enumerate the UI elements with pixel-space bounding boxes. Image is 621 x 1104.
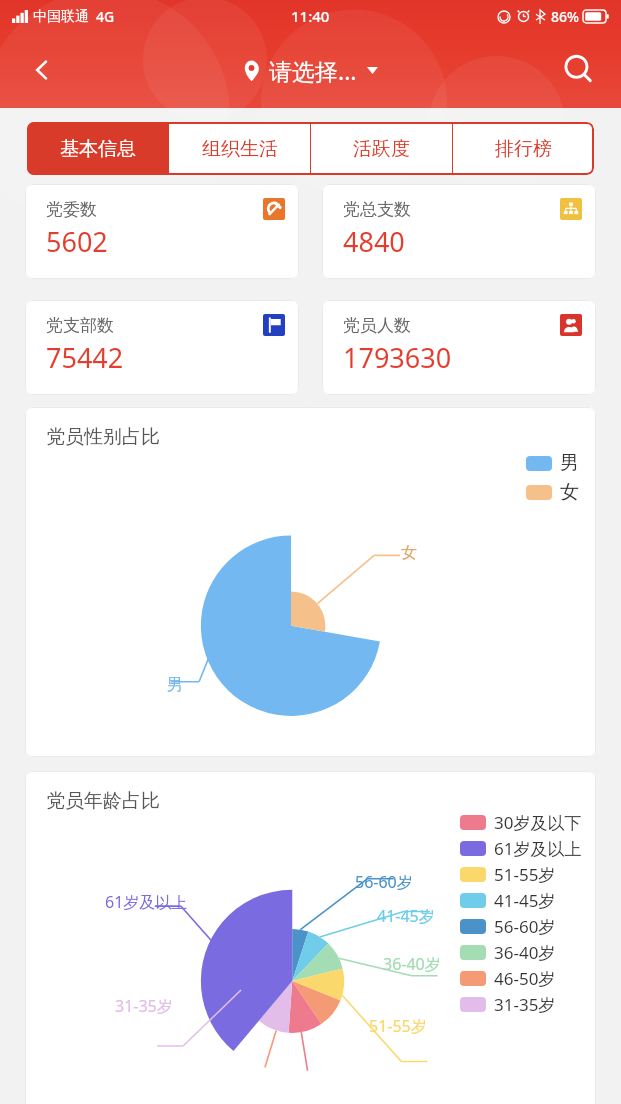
button[interactable]: 党委数 [25,184,299,279]
staticText: 11:40 [291,6,330,26]
staticText: 党委数 [46,199,97,220]
staticText: 56-60岁 [494,915,556,938]
staticText: 组织生活 [202,137,278,161]
staticText: 女 [560,480,579,504]
staticText: 51-55岁 [494,863,556,886]
button[interactable]: 基本信息 [27,122,168,175]
button[interactable]: Search [555,46,603,94]
staticText: 党员年龄占比 [46,789,160,813]
staticText: 36-40岁 [494,941,556,964]
staticText: 女 [401,543,417,563]
staticText: 4G [96,7,115,26]
staticText: 请选择... [269,55,357,86]
button[interactable]: 活跃度 [311,122,452,175]
staticText: 56-60岁 [355,871,413,893]
staticText: 基本信息 [60,137,136,161]
button[interactable]: Back [20,48,64,92]
staticText: 61岁及以上 [105,891,188,913]
staticText: 中国联通 [33,8,89,26]
button[interactable]: 党员人数 [322,300,596,395]
button[interactable]: 请选择... [235,51,386,90]
staticText: 排行榜 [495,137,552,161]
staticText: 41-45岁 [377,905,435,927]
button[interactable]: 党总支数 [322,184,596,279]
staticText: 86% [551,7,579,26]
staticText: 4840 [343,223,405,260]
button[interactable]: 组织生活 [169,122,310,175]
staticText: 1793630 [343,339,452,376]
staticText: 男 [167,675,183,695]
staticText: 活跃度 [353,137,410,161]
staticText: 51-55岁 [369,1015,427,1037]
staticText: 党员性别占比 [46,425,160,449]
staticText: 36-40岁 [383,953,441,975]
staticText: 31-35岁 [115,995,173,1017]
staticText: 61岁及以上 [494,837,582,860]
button[interactable]: 排行榜 [453,122,594,175]
staticText: 75442 [46,339,124,376]
staticText: 46-50岁 [494,967,556,990]
staticText: 31-35岁 [494,993,556,1016]
staticText: 41-45岁 [494,889,556,912]
staticText: 30岁及以下 [494,811,582,834]
button[interactable]: 党支部数 [25,300,299,395]
staticText: 党员人数 [343,315,411,336]
staticText: 5602 [46,223,108,260]
staticText: 男 [560,451,579,475]
staticText: 党总支数 [343,199,411,220]
staticText: 党支部数 [46,315,114,336]
